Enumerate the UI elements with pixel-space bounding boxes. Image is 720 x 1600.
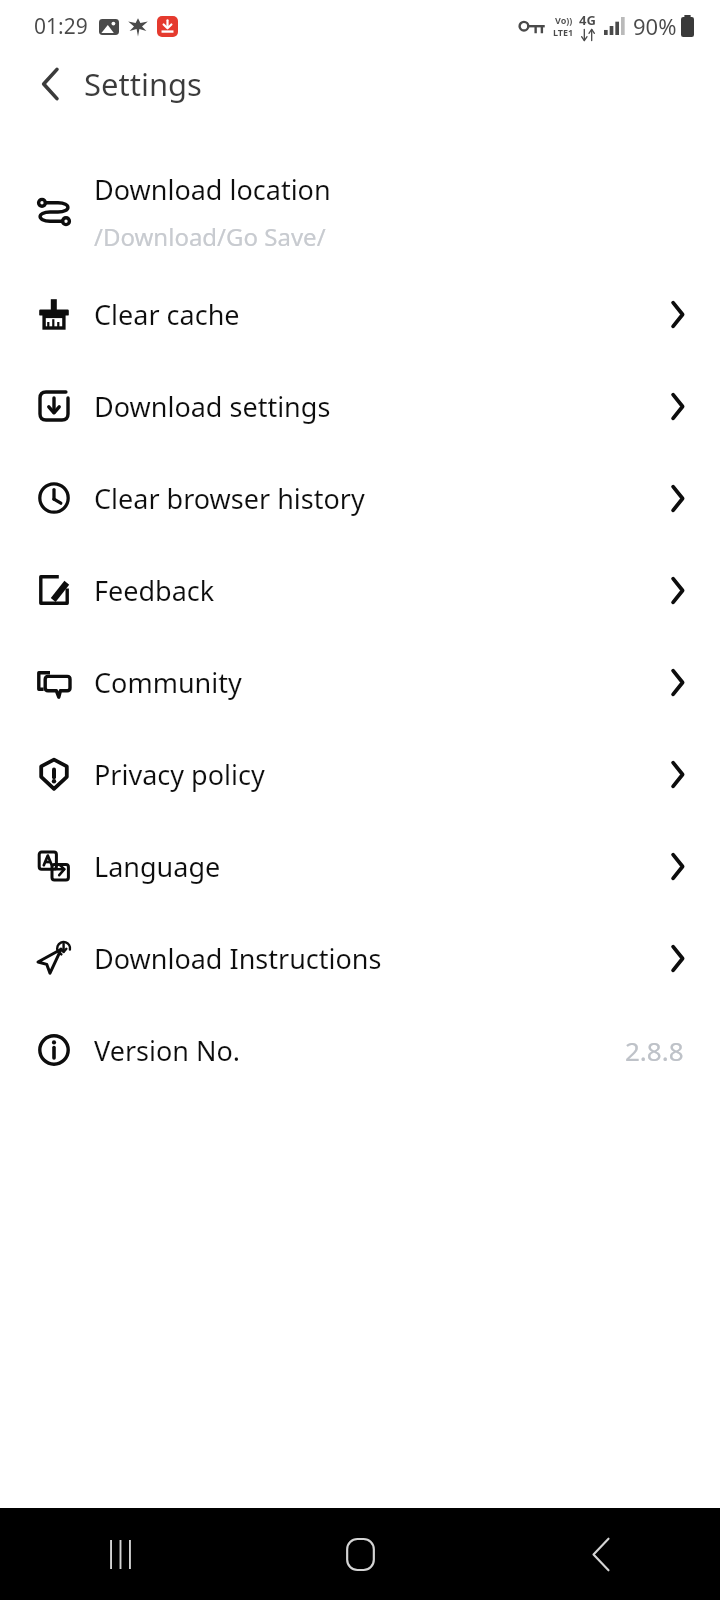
staticText: Download settings [94,388,331,425]
staticText: Privacy policy [94,756,265,793]
staticText: Vo)) [555,14,573,26]
staticText: Version No. [94,1032,241,1069]
staticText: Community [94,664,242,701]
staticText: Clear cache [94,296,240,333]
button[interactable]: Privacy policy [0,728,720,820]
staticText: Language [94,848,221,885]
button[interactable]: Recent apps [0,1508,240,1600]
button[interactable]: Feedback [0,544,720,636]
button[interactable]: Download location [0,156,720,268]
staticText: 4G [579,11,596,29]
button[interactable]: Back [480,1508,720,1600]
staticText: Clear browser history [94,480,365,517]
button[interactable]: Home [240,1508,480,1600]
staticText: Feedback [94,572,215,609]
staticText: 90% [633,11,677,41]
staticText: Settings [84,63,202,105]
staticText: /Download/Go Save/ [94,220,326,253]
button[interactable]: Clear cache [0,268,720,360]
staticText: Download Instructions [94,940,382,977]
button[interactable]: Back [26,60,74,108]
staticText: Download location [94,171,331,208]
button[interactable]: Clear browser history [0,452,720,544]
button[interactable]: Version No. [0,1004,720,1096]
staticText: 2.8.8 [625,1033,684,1068]
button[interactable]: Community [0,636,720,728]
button[interactable]: Language [0,820,720,912]
staticText: 01:29 [34,12,88,41]
button[interactable]: Download settings [0,360,720,452]
staticText: LTE1 [553,26,574,38]
button[interactable]: Download Instructions [0,912,720,1004]
